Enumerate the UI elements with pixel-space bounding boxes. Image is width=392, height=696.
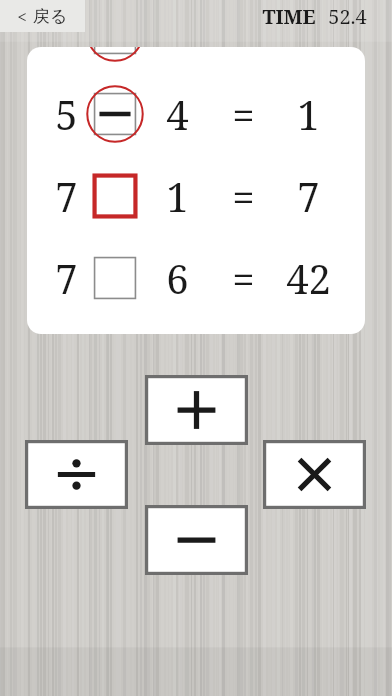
button[interactable]: Divide: [25, 440, 128, 509]
button[interactable]: Minus: [145, 505, 248, 575]
staticText: =: [232, 169, 255, 223]
staticText: 戻る: [33, 6, 68, 27]
staticText: 7: [297, 169, 320, 223]
staticText: 42: [286, 251, 331, 305]
staticText: <: [17, 5, 27, 28]
staticText: 52.4: [328, 3, 367, 30]
button[interactable]: <: [0, 0, 85, 32]
staticText: 1: [166, 169, 189, 223]
staticText: 7: [55, 169, 78, 223]
staticText: 1: [297, 87, 320, 141]
staticText: 6: [166, 251, 189, 305]
button[interactable]: Plus: [145, 375, 248, 445]
staticText: 7: [55, 251, 78, 305]
button[interactable]: Multiply: [263, 440, 366, 509]
staticText: =: [232, 251, 255, 305]
staticText: 4: [166, 87, 189, 141]
staticText: 5: [55, 87, 78, 141]
staticText: =: [232, 87, 255, 141]
staticText: TIME: [262, 3, 316, 30]
